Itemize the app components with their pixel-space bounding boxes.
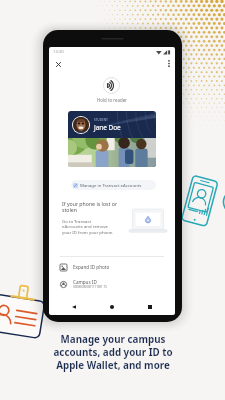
staticText: Campus ID: [73, 279, 97, 285]
button[interactable]: Back: [70, 303, 78, 311]
button[interactable]: STUDENT: [68, 111, 156, 167]
button[interactable]: More options: [163, 57, 175, 69]
staticText: Expand ID photo: [73, 264, 110, 270]
staticText: 12:30: [53, 49, 64, 55]
button[interactable]: Home: [108, 303, 116, 311]
staticText: 000000000001111001 75: [73, 285, 107, 289]
button[interactable]: Campus ID: [49, 276, 175, 292]
button[interactable]: Close: [52, 58, 64, 70]
staticText: Manage your campus accounts, add your ID…: [53, 333, 173, 372]
staticText: Hold to reader: [97, 97, 127, 103]
button[interactable]: Manage in Transact eAccounts: [71, 180, 156, 190]
staticText: Jane Doe: [94, 123, 121, 132]
button[interactable]: Recents: [146, 303, 154, 311]
staticText: If your phone is lost or stolen: [62, 200, 118, 214]
button[interactable]: Expand ID photo: [49, 260, 175, 274]
staticText: Go to Transact eAccounts and remove your…: [62, 218, 114, 236]
staticText: STUDENT: [94, 118, 109, 122]
staticText: Manage in Transact eAccounts: [80, 182, 142, 188]
